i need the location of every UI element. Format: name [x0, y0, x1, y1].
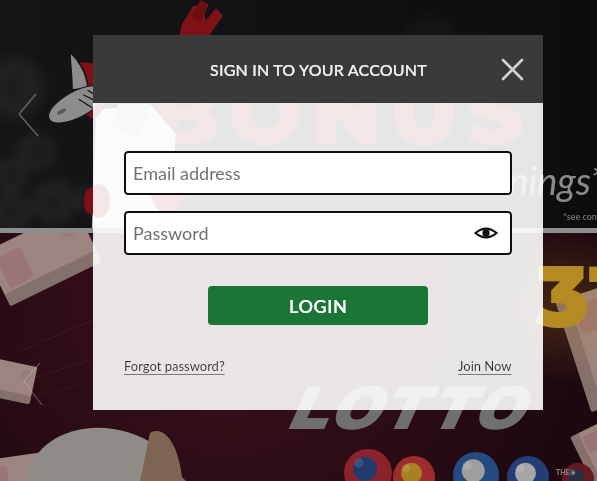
button[interactable]: Password	[124, 211, 512, 255]
button[interactable]: Close	[494, 51, 530, 87]
staticText: Password	[133, 222, 209, 244]
staticText: BONUS	[152, 59, 533, 166]
staticText: winnings*	[452, 157, 597, 203]
staticText: Forgot password?	[124, 358, 225, 374]
staticText: Email address	[133, 162, 241, 184]
staticText: *see conditions	[563, 211, 597, 222]
staticText: 31	[536, 244, 597, 349]
staticText: LOGIN	[289, 295, 348, 317]
button[interactable]: LOGIN	[208, 286, 428, 325]
staticText: LOTTO	[284, 375, 524, 442]
button[interactable]: Forgot password?	[124, 358, 225, 374]
button[interactable]: Join Now	[458, 358, 512, 374]
button[interactable]: Show password	[471, 218, 501, 248]
staticText: Join Now	[458, 358, 512, 374]
staticText: SIGN IN TO YOUR ACCOUNT	[210, 60, 427, 79]
staticText: THE ●	[556, 468, 576, 476]
button[interactable]: Email address	[124, 151, 512, 195]
